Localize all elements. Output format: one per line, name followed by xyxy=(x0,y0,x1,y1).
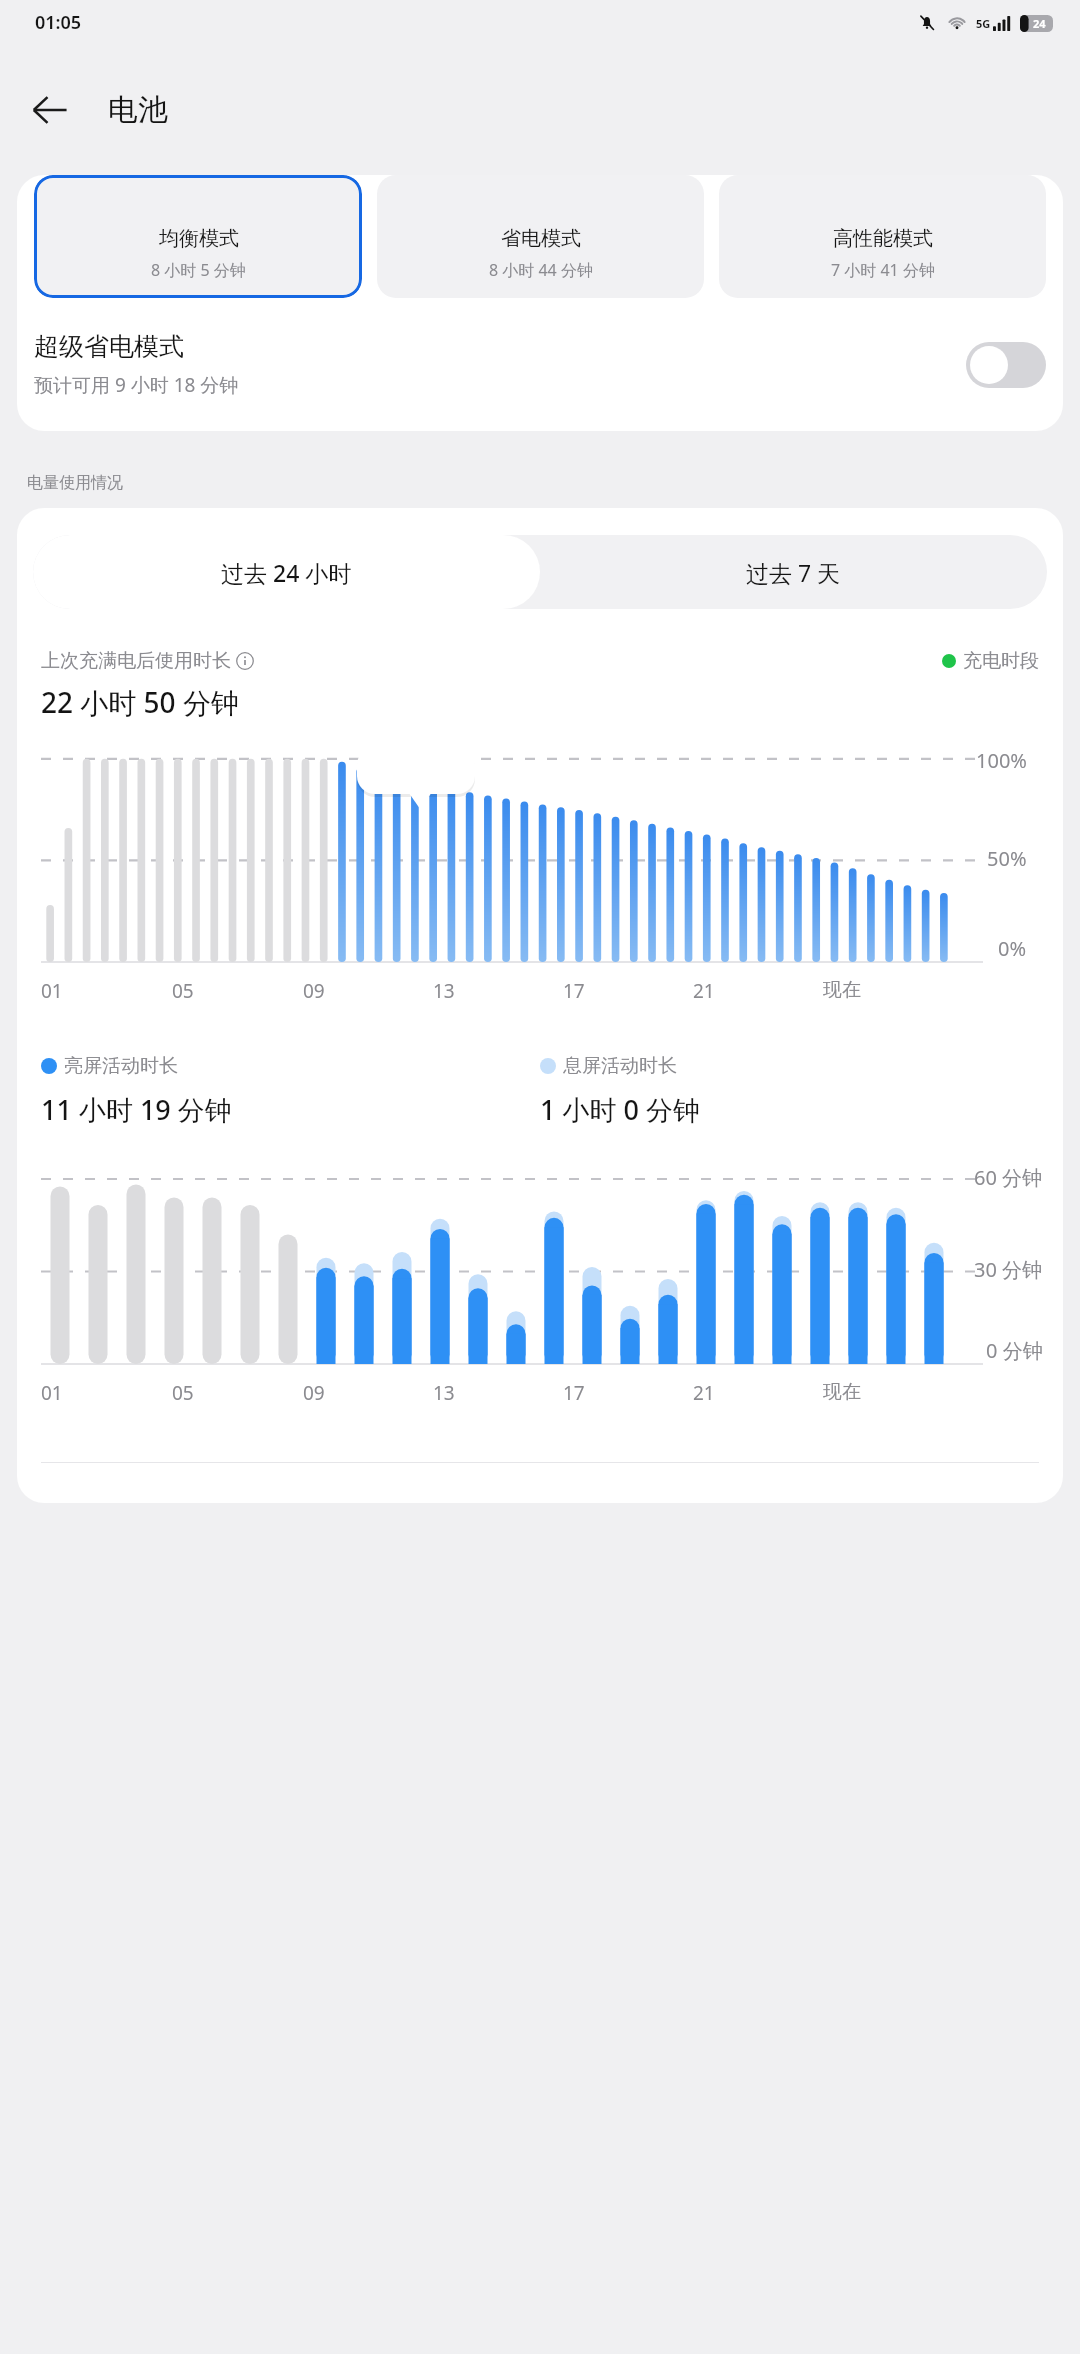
staticText: 05 xyxy=(172,1380,303,1406)
staticText: 09 xyxy=(303,1380,433,1406)
staticText: 电量使用情况 xyxy=(27,473,123,493)
button[interactable]: 省电模式 xyxy=(377,175,704,298)
staticText: 省电模式 xyxy=(501,226,581,251)
staticText: 现在 xyxy=(823,978,953,1002)
staticText: 电池 xyxy=(108,91,168,129)
staticText: 09 xyxy=(303,978,433,1004)
staticText: 13 xyxy=(433,978,563,1004)
staticText: 100% xyxy=(976,747,1027,774)
staticText: 01:05 xyxy=(35,10,82,35)
staticText: 过去 24 小时 xyxy=(221,557,352,588)
staticText: 超级省电模式 xyxy=(34,331,184,362)
button[interactable]: 超级省电模式 xyxy=(34,298,1046,431)
staticText: 11 小时 19 分钟 xyxy=(41,1091,232,1128)
staticText: 8 小时 5 分钟 xyxy=(151,259,246,281)
staticText: 01 xyxy=(41,1380,172,1406)
staticText: 0% xyxy=(998,935,1027,962)
staticText: 均衡模式 xyxy=(159,226,239,251)
staticText: 30 分钟 xyxy=(974,1256,1043,1283)
staticText: 22 小时 50 分钟 xyxy=(41,683,239,721)
staticText: 13 xyxy=(433,1380,563,1406)
staticText: 现在 xyxy=(823,1380,953,1404)
staticText: 充电时段 xyxy=(963,649,1039,673)
staticText: 5G xyxy=(976,16,991,31)
button[interactable]: 均衡模式 xyxy=(34,175,362,298)
staticText: 24 xyxy=(1033,16,1046,31)
staticText: 上次充满电后使用时长 xyxy=(41,649,231,673)
staticText: 高性能模式 xyxy=(833,226,933,251)
staticText: 1 小时 0 分钟 xyxy=(540,1091,700,1128)
staticText: 17 xyxy=(563,1380,693,1406)
staticText: 预计可用 9 小时 18 分钟 xyxy=(34,372,239,398)
staticText: 01 xyxy=(41,978,172,1004)
staticText: 8 小时 44 分钟 xyxy=(489,259,593,281)
button[interactable]: 高性能模式 xyxy=(719,175,1046,298)
staticText: 05 xyxy=(172,978,303,1004)
button[interactable]: 过去 24 小时 xyxy=(33,535,540,609)
staticText: 50% xyxy=(987,845,1027,872)
staticText: 21 xyxy=(693,1380,823,1406)
staticText: 息屏活动时长 xyxy=(563,1054,677,1078)
staticText: 21 xyxy=(693,978,823,1004)
staticText: 亮屏活动时长 xyxy=(64,1054,178,1078)
staticText: 过去 7 天 xyxy=(746,557,841,588)
button[interactable]: 过去 7 天 xyxy=(540,535,1047,609)
staticText: 7 小时 41 分钟 xyxy=(831,259,935,281)
staticText: 0 分钟 xyxy=(986,1337,1043,1364)
staticText: 60 分钟 xyxy=(974,1164,1043,1191)
button[interactable]: Back xyxy=(21,81,79,139)
staticText: 17 xyxy=(563,978,693,1004)
